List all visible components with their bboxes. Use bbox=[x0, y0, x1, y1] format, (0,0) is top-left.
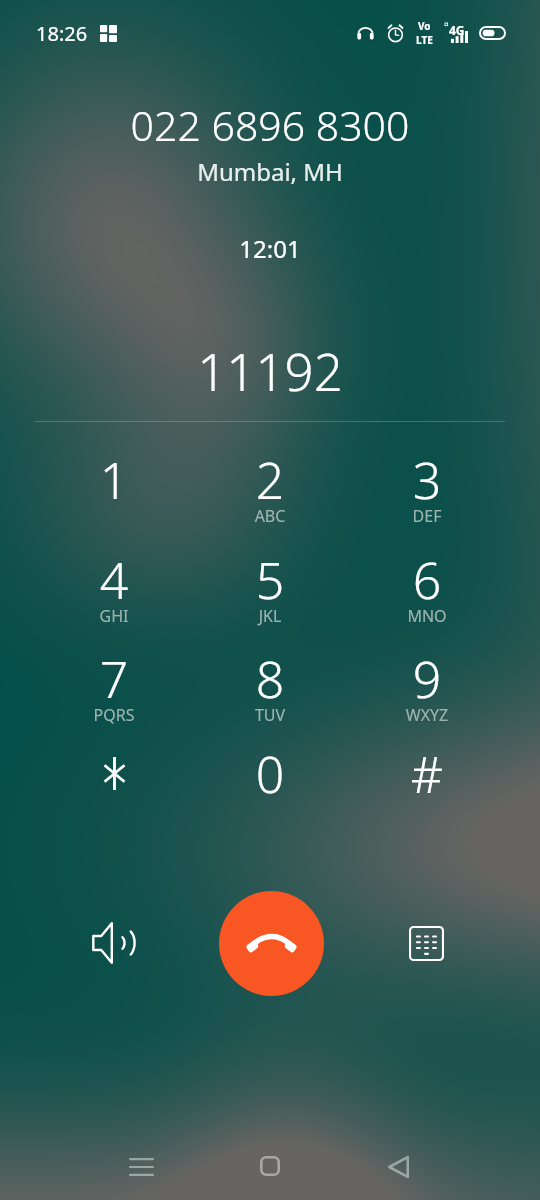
staticText: GHI bbox=[36, 605, 192, 627]
button[interactable]: 9 bbox=[349, 637, 505, 736]
button[interactable]: End call bbox=[219, 891, 324, 996]
button[interactable]: 1 bbox=[36, 438, 192, 537]
staticText: 6 bbox=[349, 546, 505, 614]
staticText: TUV bbox=[192, 704, 348, 726]
button[interactable]: 7 bbox=[36, 637, 192, 736]
button[interactable]: 6 bbox=[349, 538, 505, 637]
staticText: # bbox=[349, 740, 505, 808]
staticText: 3 bbox=[349, 446, 505, 514]
staticText: MNO bbox=[349, 605, 505, 627]
button[interactable]: Back bbox=[353, 1135, 443, 1199]
staticText: PQRS bbox=[36, 704, 192, 726]
staticText: DEF bbox=[349, 505, 505, 527]
staticText: 8 bbox=[192, 645, 348, 713]
button[interactable]: 8 bbox=[192, 637, 348, 736]
button[interactable] bbox=[36, 732, 192, 831]
staticText: 1 bbox=[36, 446, 192, 514]
button[interactable]: 3 bbox=[349, 438, 505, 537]
staticText: Vo bbox=[418, 19, 431, 33]
button[interactable]: Home bbox=[225, 1134, 315, 1198]
staticText: 7 bbox=[36, 645, 192, 713]
staticText: 18:26 bbox=[36, 20, 88, 47]
staticText: 12:01 bbox=[0, 232, 540, 265]
staticText: JKL bbox=[192, 605, 348, 627]
staticText: 0 bbox=[192, 740, 348, 808]
staticText: ABC bbox=[192, 505, 348, 527]
button[interactable]: Speaker bbox=[66, 895, 162, 991]
staticText: 11192 bbox=[0, 336, 540, 405]
staticText: 2 bbox=[192, 446, 348, 514]
button[interactable]: 4 bbox=[36, 538, 192, 637]
staticText: 9 bbox=[349, 645, 505, 713]
button[interactable]: Recents bbox=[96, 1135, 186, 1199]
button[interactable]: 5 bbox=[192, 538, 348, 637]
button[interactable]: 0 bbox=[192, 732, 348, 831]
staticText: 4G bbox=[449, 22, 465, 38]
staticText: LTE bbox=[416, 33, 433, 47]
button[interactable]: 2 bbox=[192, 438, 348, 537]
staticText: 5 bbox=[192, 546, 348, 614]
staticText: Mumbai, MH bbox=[0, 155, 540, 188]
staticText: WXYZ bbox=[349, 704, 505, 726]
staticText: 4 bbox=[36, 546, 192, 614]
staticText: 022 6896 8300 bbox=[0, 97, 540, 153]
button[interactable]: Keypad bbox=[378, 895, 474, 991]
button[interactable]: # bbox=[349, 732, 505, 831]
